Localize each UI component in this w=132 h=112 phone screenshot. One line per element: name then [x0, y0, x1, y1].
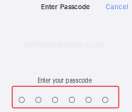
- staticText: Cancel: [105, 3, 128, 11]
- staticText: Enter Passcode: [41, 3, 90, 11]
- button[interactable]: Passcode: [12, 86, 119, 108]
- staticText: Enter your passcode: [37, 77, 91, 84]
- button[interactable]: Cancel: [102, 0, 131, 14]
